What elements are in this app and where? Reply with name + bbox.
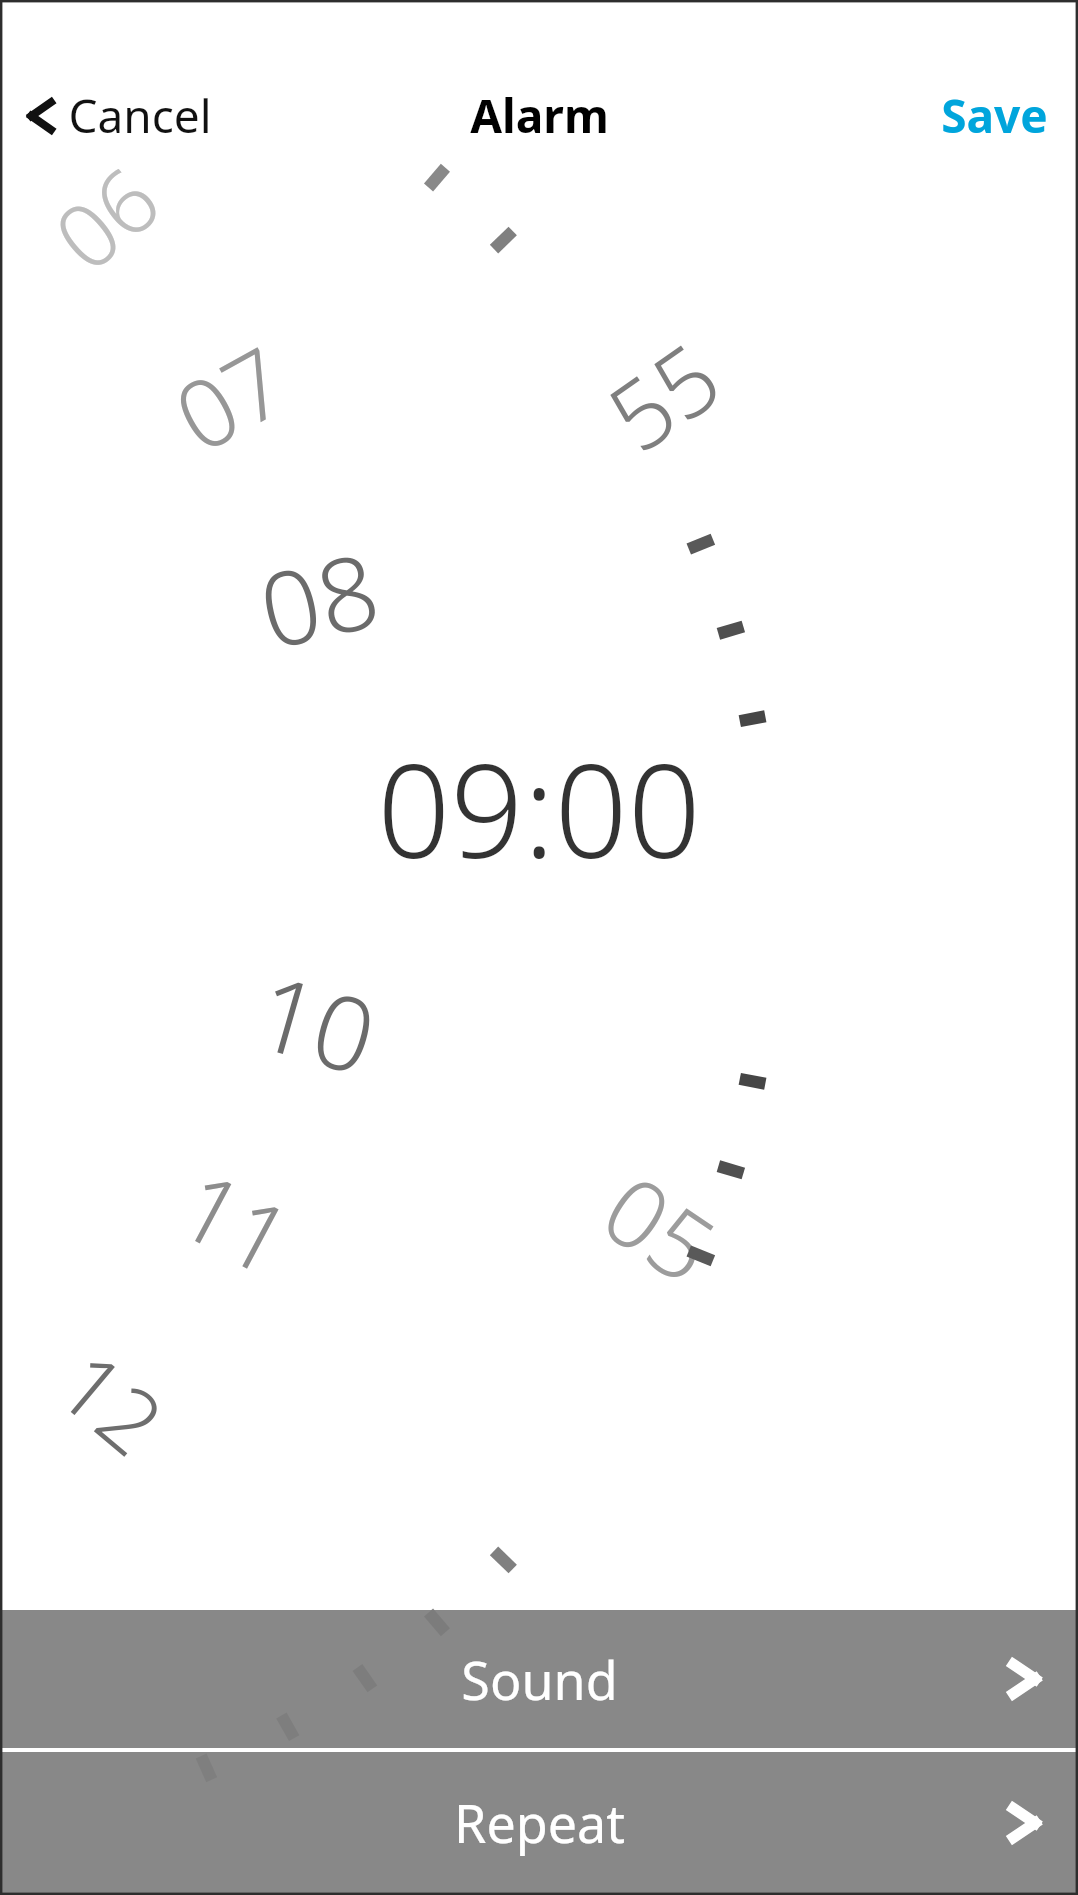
button[interactable]: Minute 05 <box>562 1132 758 1324</box>
staticText: Sound <box>461 1644 618 1715</box>
staticText: 05 <box>579 1145 740 1311</box>
button[interactable]: Hour 08 <box>225 511 412 686</box>
staticText: 10 <box>241 940 392 1105</box>
button[interactable]: Repeat <box>0 1752 1078 1893</box>
button[interactable]: 09:00 <box>0 718 1078 898</box>
staticText: Save <box>941 84 1048 147</box>
staticText: 11 <box>158 1140 314 1304</box>
staticText: 09:00 <box>377 721 701 895</box>
staticText: Cancel <box>68 84 212 147</box>
staticText: Repeat <box>454 1787 625 1858</box>
other: Repeat options <box>1008 1796 1042 1850</box>
other: Back <box>28 93 56 139</box>
button[interactable]: Sound <box>0 1610 1078 1748</box>
button[interactable]: Hour 06 <box>12 125 198 310</box>
button[interactable]: Hour 11 <box>140 1129 332 1315</box>
button[interactable]: Save <box>941 84 1048 147</box>
staticText: 55 <box>582 313 744 479</box>
staticText: 07 <box>152 316 308 480</box>
staticText: 06 <box>28 139 183 296</box>
button[interactable]: Hour 07 <box>133 304 327 492</box>
other: Sound options <box>1008 1652 1042 1706</box>
button[interactable]: Back <box>28 84 212 147</box>
staticText: 08 <box>246 518 391 679</box>
button[interactable]: Hour 10 <box>220 932 413 1113</box>
button[interactable]: Minute 55 <box>564 299 761 492</box>
staticText: Alarm <box>470 84 609 147</box>
button[interactable]: Hour 12 <box>19 1309 205 1494</box>
staticText: 12 <box>35 1324 189 1481</box>
